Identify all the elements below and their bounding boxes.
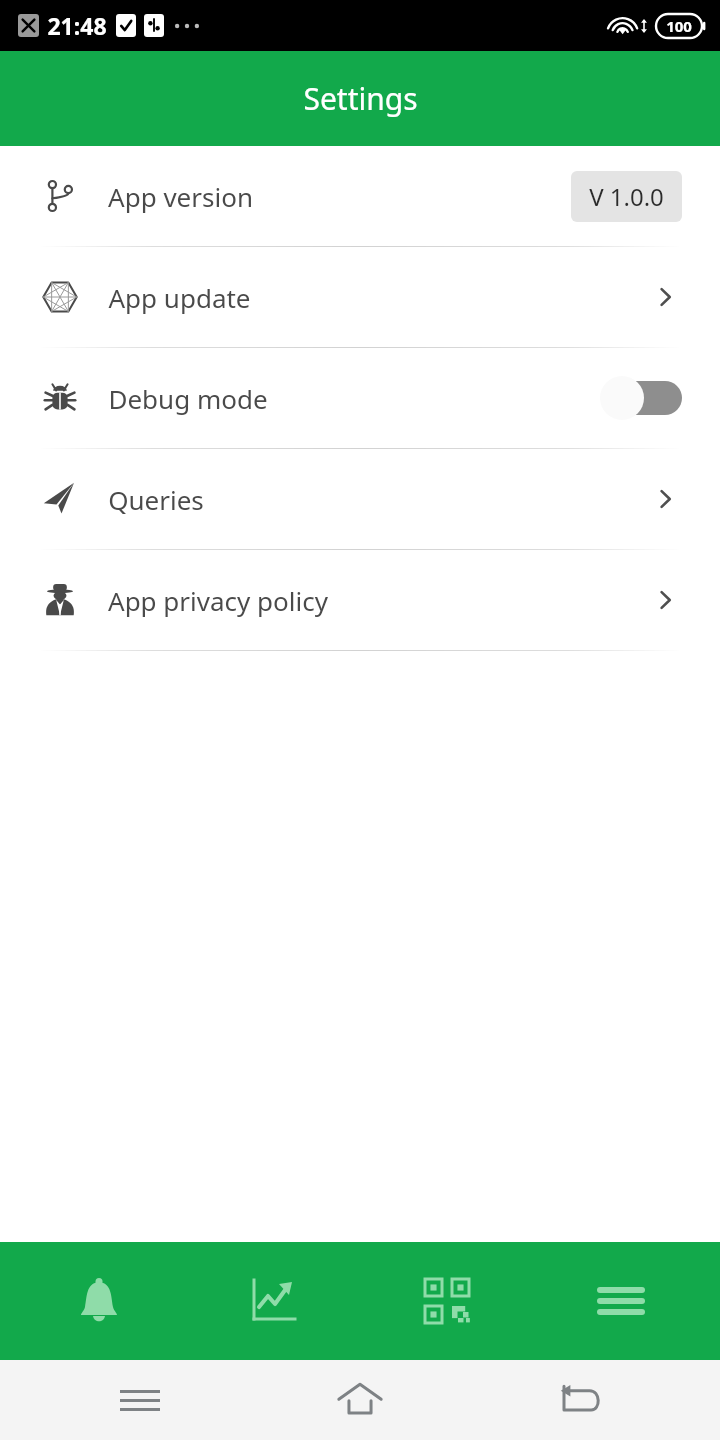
staticText: App update — [108, 280, 251, 315]
button[interactable]: App update — [0, 247, 720, 347]
staticText: App version — [108, 179, 253, 214]
button[interactable]: Recent apps — [60, 1360, 220, 1440]
button[interactable]: Home — [280, 1360, 440, 1440]
staticText: V 1.0.0 — [589, 180, 664, 213]
button[interactable]: Menu — [546, 1242, 696, 1360]
button[interactable]: Scan QR code — [372, 1242, 522, 1360]
staticText: Debug mode — [108, 381, 268, 416]
button[interactable]: App privacy policy — [0, 550, 720, 650]
button[interactable]: Queries — [0, 449, 720, 549]
button[interactable]: Notifications — [24, 1242, 174, 1360]
button[interactable]: Back — [500, 1360, 660, 1440]
other: Open — [648, 482, 682, 516]
button[interactable]: Statistics — [198, 1242, 348, 1360]
button[interactable]: App version — [0, 146, 720, 246]
staticText: App privacy policy — [108, 583, 328, 618]
staticText: 100 — [666, 16, 692, 36]
other: Open — [648, 280, 682, 314]
button[interactable]: Debug mode — [0, 348, 720, 448]
button[interactable]: V 1.0.0 — [571, 171, 682, 222]
button[interactable]: Debug mode toggle — [596, 375, 682, 421]
other: Open — [648, 583, 682, 617]
staticText: 21:48 — [47, 10, 107, 41]
staticText: Queries — [108, 482, 204, 517]
staticText: Settings — [303, 78, 418, 119]
